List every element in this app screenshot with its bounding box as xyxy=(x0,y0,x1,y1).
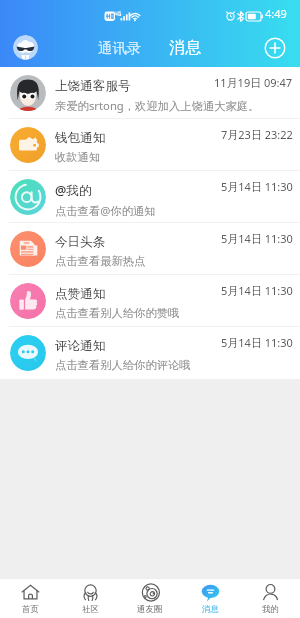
staticText: 点击查看@你的通知 xyxy=(55,203,156,218)
staticText: 点击查看最新热点 xyxy=(55,254,146,268)
button[interactable]: 今日头条 xyxy=(0,223,300,275)
staticText: 消息 xyxy=(202,604,219,615)
button[interactable]: 通友圈 xyxy=(120,579,180,618)
button[interactable]: 消息 xyxy=(165,34,206,60)
staticText: 消息 xyxy=(169,37,202,57)
staticText: 亲爱的srtong，欢迎加入上饶通大家庭。 xyxy=(55,98,260,113)
staticText: 点赞通知 xyxy=(55,286,106,302)
button[interactable]: 评论通知 xyxy=(0,327,300,379)
staticText: 5月14日 11:30 xyxy=(221,179,293,194)
staticText: 5月14日 11:30 xyxy=(221,335,293,350)
button[interactable]: 上饶通客服号 xyxy=(0,67,300,119)
button[interactable]: 点赞通知 xyxy=(0,275,300,327)
staticText: 11月19日 09:47 xyxy=(214,75,293,90)
staticText: 通讯录 xyxy=(98,39,142,57)
button[interactable]: 社区 xyxy=(60,579,120,618)
button[interactable]: @我的 xyxy=(0,171,300,223)
staticText: 5月14日 11:30 xyxy=(221,231,293,246)
staticText: 钱包通知 xyxy=(55,130,106,146)
staticText: 社区 xyxy=(82,604,99,615)
staticText: 收款通知 xyxy=(55,150,101,164)
button[interactable]: 钱包通知 xyxy=(0,119,300,171)
button[interactable]: 消息 xyxy=(180,579,240,618)
staticText: 点击查看别人给你的评论哦 xyxy=(55,358,191,372)
staticText: 通友圈 xyxy=(137,604,163,615)
button[interactable]: Add xyxy=(264,37,286,59)
button[interactable]: 首页 xyxy=(0,579,60,618)
staticText: 评论通知 xyxy=(55,338,106,354)
staticText: 4:49 xyxy=(265,6,287,21)
button[interactable]: Profile xyxy=(13,35,38,60)
staticText: @我的 xyxy=(55,182,92,199)
button[interactable]: 通讯录 xyxy=(94,36,146,60)
staticText: 我的 xyxy=(262,604,279,615)
button[interactable]: 我的 xyxy=(240,579,300,618)
staticText: 上饶通客服号 xyxy=(55,78,131,94)
staticText: 点击查看别人给你的赞哦 xyxy=(55,306,180,320)
staticText: 7月23日 23:22 xyxy=(221,127,293,142)
staticText: 今日头条 xyxy=(55,234,106,250)
staticText: 首页 xyxy=(22,604,39,615)
staticText: 5月14日 11:30 xyxy=(221,283,293,298)
